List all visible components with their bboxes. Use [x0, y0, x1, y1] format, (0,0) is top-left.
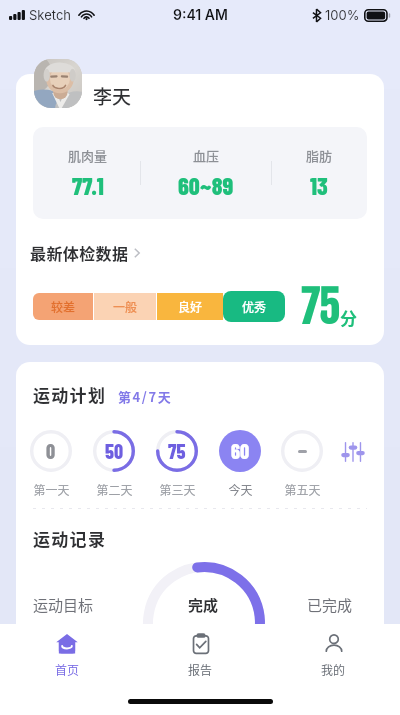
staticText: 运动目标 [33, 594, 94, 616]
staticText: 9:41 AM [173, 6, 228, 23]
staticText: 优秀 [242, 298, 267, 315]
staticText: 13 [310, 171, 328, 200]
staticText: Sketch [29, 7, 72, 23]
button[interactable]: 0 [21, 430, 81, 498]
staticText: 一般 [113, 298, 138, 315]
staticText: 第一天 [33, 481, 70, 498]
staticText: 75 [301, 281, 340, 335]
button[interactable]: 50 [84, 430, 144, 498]
button[interactable]: 报告 [134, 624, 267, 686]
button[interactable]: 75 [147, 430, 207, 498]
staticText: 良好 [178, 298, 203, 315]
staticText: 今天 [228, 481, 253, 498]
staticText: 运动计划 [33, 382, 107, 407]
button[interactable]: Adjust plan [342, 441, 364, 463]
staticText: 第二天 [96, 481, 133, 498]
staticText: 较差 [51, 298, 76, 315]
staticText: 已完成 [307, 594, 353, 616]
staticText: 报告 [188, 661, 213, 678]
staticText: 李天 [93, 82, 132, 110]
staticText: 我的 [321, 661, 346, 678]
staticText: 50 [105, 439, 124, 463]
staticText: 60~89 [178, 171, 234, 200]
staticText: 75 [168, 439, 186, 463]
button[interactable]: 最新体检数据 [30, 241, 140, 264]
staticText: 77.1 [72, 171, 104, 200]
staticText: 首页 [55, 661, 80, 678]
button[interactable]: 第五天 [272, 430, 332, 498]
staticText: 最新体检数据 [30, 241, 129, 264]
button[interactable]: 首页 [0, 624, 134, 686]
staticText: 运动记录 [33, 526, 107, 551]
staticText: 肌肉量 [68, 146, 108, 165]
button[interactable]: 60 [210, 430, 270, 498]
staticText: 0 [46, 439, 56, 463]
staticText: 脂肪 [306, 146, 333, 165]
staticText: 60 [231, 439, 250, 463]
staticText: 100% [325, 7, 360, 23]
staticText: 第三天 [159, 481, 196, 498]
staticText: 完成 [188, 594, 219, 616]
staticText: 分 [340, 305, 357, 330]
staticText: 第五天 [284, 481, 321, 498]
staticText: 第4/7天 [118, 387, 173, 406]
button[interactable]: 我的 [267, 624, 400, 686]
staticText: 血压 [193, 146, 220, 165]
